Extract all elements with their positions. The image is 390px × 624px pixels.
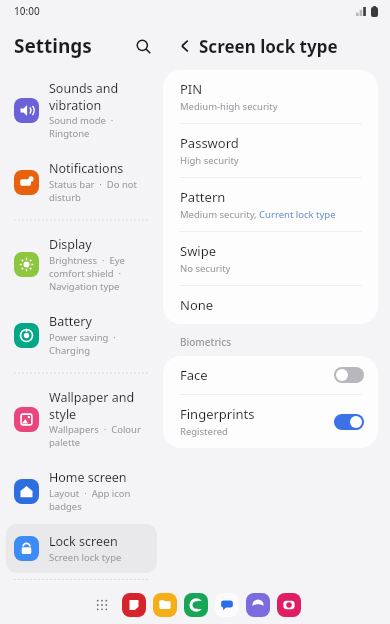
button[interactable]: internet: [246, 593, 270, 617]
button[interactable]: camera: [277, 593, 301, 617]
staticText: Lock screen: [49, 533, 118, 550]
button[interactable]: None: [163, 286, 378, 324]
staticText: Pattern: [180, 188, 226, 206]
staticText: Face: [180, 366, 208, 384]
button[interactable]: PIN: [163, 70, 378, 123]
staticText: Screen lock type: [199, 35, 338, 58]
button[interactable]: Pattern: [163, 178, 378, 231]
staticText: Biometrics: [180, 335, 232, 349]
staticText: Sounds and vibration: [49, 80, 149, 113]
button[interactable]: Swipe: [163, 232, 378, 285]
button[interactable]: Lock screen: [6, 524, 157, 573]
staticText: Display: [49, 236, 92, 253]
staticText: Status bar · Do not disturb: [49, 178, 149, 204]
button[interactable]: Display: [6, 227, 157, 302]
staticText: Password: [180, 134, 239, 152]
button[interactable]: Fingerprints: [163, 395, 378, 448]
staticText: 10:00: [14, 4, 40, 18]
staticText: Screen lock type: [49, 551, 122, 564]
button[interactable]: Password: [163, 124, 378, 177]
button[interactable]: Face: [163, 356, 378, 394]
staticText: Home screen: [49, 469, 127, 486]
button[interactable]: messages: [215, 593, 239, 617]
staticText: Fingerprints: [180, 405, 255, 423]
staticText: Swipe: [180, 242, 217, 260]
button[interactable]: Notifications: [6, 151, 157, 213]
button[interactable]: Back: [172, 33, 198, 59]
staticText: Notifications: [49, 160, 124, 177]
button[interactable]: Face toggle: [334, 367, 364, 383]
staticText: Registered: [180, 425, 228, 438]
staticText: Wallpapers · Colour palette: [49, 423, 149, 449]
staticText: Layout · App icon badges: [49, 487, 149, 513]
button[interactable]: files: [153, 593, 177, 617]
staticText: No security: [180, 262, 231, 275]
button[interactable]: All apps: [90, 593, 114, 617]
button[interactable]: Sounds and vibration: [6, 71, 157, 149]
staticText: Wallpaper and style: [49, 389, 149, 422]
staticText: Power saving · Charging: [49, 331, 149, 357]
staticText: Medium security, Current lock type: [180, 208, 336, 221]
button[interactable]: Fingerprints toggle: [334, 414, 364, 430]
button[interactable]: Wallpaper and style: [6, 380, 157, 458]
button[interactable]: Battery: [6, 304, 157, 366]
staticText: High security: [180, 154, 239, 167]
staticText: Brightness · Eye comfort shield · Naviga…: [49, 254, 149, 293]
button[interactable]: Search: [130, 33, 156, 59]
staticText: None: [180, 296, 214, 314]
button[interactable]: keep: [122, 593, 146, 617]
staticText: Settings: [14, 33, 92, 59]
staticText: Medium-high security: [180, 100, 278, 113]
button[interactable]: phone: [184, 593, 208, 617]
staticText: Battery: [49, 313, 92, 330]
staticText: Sound mode · Ringtone: [49, 114, 149, 140]
staticText: PIN: [180, 80, 203, 98]
button[interactable]: Home screen: [6, 460, 157, 522]
